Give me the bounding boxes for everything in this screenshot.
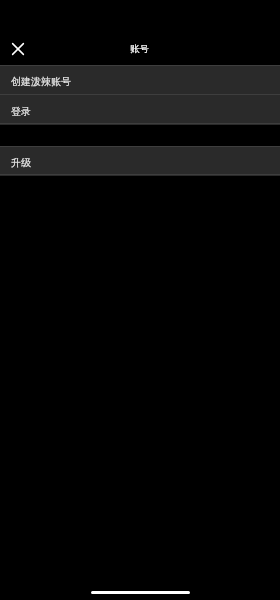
staticText: 账号 xyxy=(130,42,149,54)
staticText: 登录 xyxy=(11,104,31,117)
staticText: 升级 xyxy=(11,155,31,168)
button[interactable]: 登录 xyxy=(0,95,280,125)
button[interactable]: 升级 xyxy=(0,146,280,176)
button[interactable]: 创建泼辣账号 xyxy=(0,65,280,95)
staticText: 创建泼辣账号 xyxy=(11,74,71,87)
button[interactable]: Close xyxy=(0,31,34,65)
